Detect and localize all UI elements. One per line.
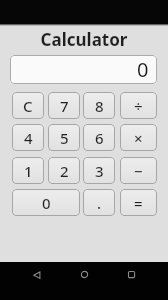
button[interactable]: 6 (83, 124, 115, 151)
button[interactable]: . (83, 189, 115, 216)
staticText: 5 (60, 128, 69, 148)
staticText: 0 (137, 56, 149, 83)
button[interactable]: ÷ (120, 92, 157, 119)
staticText: − (134, 161, 143, 181)
staticText: . (97, 193, 102, 213)
button[interactable]: 0 (10, 55, 157, 84)
staticText: 8 (95, 96, 104, 116)
button[interactable]: × (120, 124, 157, 151)
staticText: × (134, 128, 143, 148)
staticText: = (134, 193, 143, 213)
staticText: Calculator (0, 28, 168, 51)
button[interactable] (115, 262, 148, 290)
staticText: 0 (42, 193, 51, 213)
staticText: 7 (60, 96, 69, 116)
button[interactable]: − (120, 157, 157, 184)
button[interactable]: = (120, 189, 157, 216)
staticText: 4 (24, 128, 33, 148)
staticText: 3 (95, 161, 104, 181)
button[interactable]: 4 (12, 124, 44, 151)
button[interactable]: 2 (48, 157, 80, 184)
staticText: ÷ (134, 96, 143, 116)
button[interactable] (20, 262, 53, 290)
staticText: C (23, 96, 33, 116)
button[interactable]: 0 (12, 189, 80, 216)
staticText: 6 (95, 128, 104, 148)
button[interactable]: 7 (48, 92, 80, 119)
button[interactable]: 3 (83, 157, 115, 184)
staticText: 2 (60, 161, 69, 181)
button[interactable]: 5 (48, 124, 80, 151)
button[interactable]: 1 (12, 157, 44, 184)
button[interactable]: 8 (83, 92, 115, 119)
staticText: 1 (24, 161, 33, 181)
button[interactable]: C (12, 92, 44, 119)
button[interactable] (68, 262, 101, 290)
